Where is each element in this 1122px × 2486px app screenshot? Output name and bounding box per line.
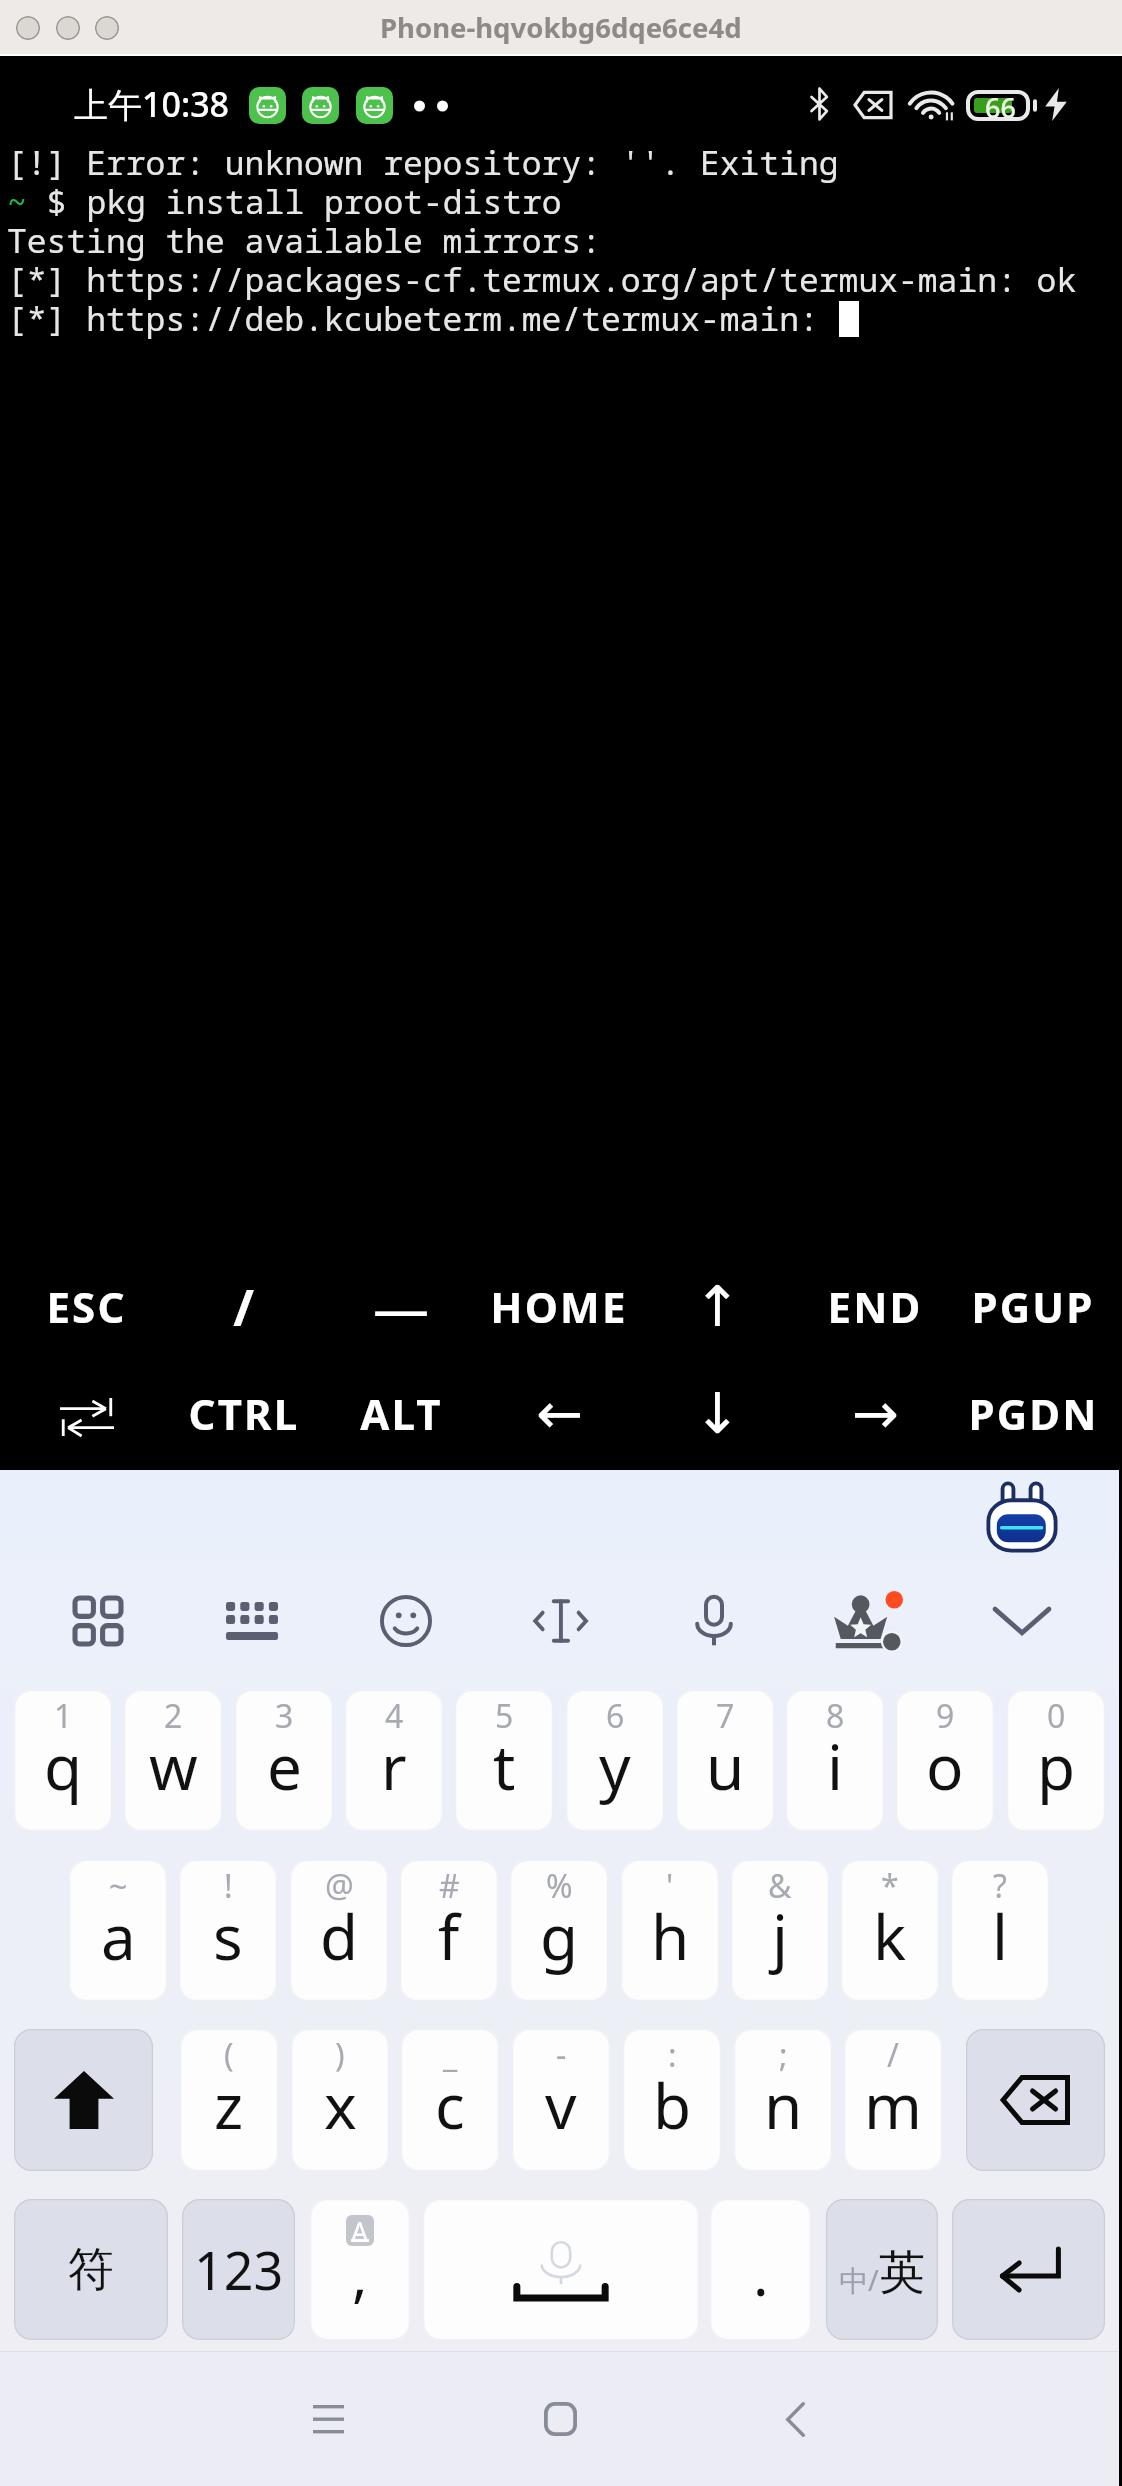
- staticText: 7: [716, 1694, 735, 1738]
- button[interactable]: i: [786, 1690, 884, 1831]
- staticText: ): [335, 2033, 345, 2077]
- button[interactable]: ↓: [638, 1363, 796, 1470]
- button[interactable]: 123: [182, 2199, 295, 2340]
- staticText: 0: [1047, 1694, 1066, 1738]
- button[interactable]: lang: [826, 2199, 938, 2340]
- button[interactable]: mic: [659, 1576, 769, 1666]
- staticText: c: [435, 2063, 465, 2147]
- button[interactable]: l: [951, 1860, 1049, 2001]
- button[interactable]: ESC: [8, 1256, 165, 1363]
- button[interactable]: a: [69, 1860, 167, 2001]
- staticText: ←: [536, 1381, 583, 1446]
- button[interactable]: PGUP: [954, 1256, 1112, 1363]
- button[interactable]: o: [896, 1690, 994, 1831]
- staticText: 123: [194, 2234, 284, 2305]
- button[interactable]: /: [165, 1256, 322, 1363]
- staticText: ?: [993, 1864, 1007, 1908]
- button[interactable]: PGDN: [954, 1363, 1112, 1470]
- staticText: m: [864, 2063, 922, 2147]
- staticText: [*] https://packages-cf.termux.org/apt/t…: [7, 257, 1077, 302]
- button[interactable]: .: [710, 2199, 811, 2340]
- button[interactable]: q: [14, 1690, 112, 1831]
- staticText: ↓: [694, 1381, 741, 1446]
- button[interactable]: Home: [510, 2369, 610, 2469]
- staticText: 1: [54, 1694, 73, 1738]
- staticText: 6: [606, 1694, 625, 1738]
- button[interactable]: p: [1007, 1690, 1105, 1831]
- button[interactable]: kb: [197, 1576, 307, 1666]
- button[interactable]: h: [621, 1860, 719, 2001]
- staticText: o: [926, 1724, 964, 1808]
- staticText: 9: [936, 1694, 955, 1738]
- button[interactable]: HOME: [480, 1256, 638, 1363]
- button[interactable]: Termux notification: [356, 87, 393, 124]
- staticText: ~: [7, 179, 27, 224]
- button[interactable]: 符: [14, 2199, 168, 2340]
- button[interactable]: g: [510, 1860, 608, 2001]
- button[interactable]: d: [290, 1860, 388, 2001]
- button[interactable]: Window button: [95, 16, 119, 40]
- staticText: !: [224, 1864, 233, 1908]
- button[interactable]: —: [322, 1256, 480, 1363]
- staticText: a: [101, 1894, 136, 1978]
- button[interactable]: shift: [14, 2029, 153, 2171]
- button[interactable]: CTRL: [165, 1363, 322, 1470]
- button[interactable]: t: [455, 1690, 553, 1831]
- button[interactable]: TAB: [8, 1363, 165, 1470]
- staticText: →: [852, 1381, 899, 1446]
- button[interactable]: b: [623, 2029, 721, 2171]
- button[interactable]: ,: [310, 2199, 410, 2340]
- button[interactable]: u: [676, 1690, 774, 1831]
- button[interactable]: Window button: [16, 16, 40, 40]
- button[interactable]: ←: [480, 1363, 638, 1470]
- staticText: q: [44, 1724, 83, 1808]
- button[interactable]: e: [235, 1690, 333, 1831]
- button[interactable]: x: [291, 2029, 389, 2171]
- button[interactable]: z: [180, 2029, 278, 2171]
- button[interactable]: space: [423, 2199, 699, 2340]
- button[interactable]: w: [124, 1690, 222, 1831]
- button[interactable]: Termux notification: [249, 87, 286, 124]
- staticText: 8: [826, 1694, 845, 1738]
- button[interactable]: down: [967, 1576, 1077, 1666]
- button[interactable]: Assistant: [987, 1482, 1057, 1552]
- staticText: END: [827, 1278, 923, 1335]
- button[interactable]: c: [401, 2029, 499, 2171]
- staticText: ;: [779, 2033, 788, 2077]
- button[interactable]: s: [179, 1860, 277, 2001]
- button[interactable]: crown: [813, 1576, 923, 1666]
- button[interactable]: grid: [43, 1576, 153, 1666]
- staticText: v: [545, 2063, 577, 2147]
- staticText: -: [556, 2033, 567, 2077]
- button[interactable]: ↑: [638, 1256, 796, 1363]
- staticText: 中/: [839, 2260, 879, 2300]
- button[interactable]: cursor: [505, 1576, 615, 1666]
- staticText: ~: [109, 1864, 128, 1908]
- button[interactable]: v: [512, 2029, 610, 2171]
- button[interactable]: y: [566, 1690, 664, 1831]
- staticText: i: [827, 1724, 843, 1808]
- button[interactable]: backspace: [966, 2029, 1105, 2171]
- button[interactable]: j: [731, 1860, 829, 2001]
- button[interactable]: enter: [952, 2199, 1105, 2340]
- staticText: PGDN: [968, 1385, 1099, 1442]
- button[interactable]: n: [734, 2029, 832, 2171]
- button[interactable]: Window button: [56, 16, 80, 40]
- staticText: h: [651, 1894, 690, 1978]
- staticText: t: [493, 1724, 516, 1808]
- button[interactable]: Recents: [278, 2369, 378, 2469]
- staticText: %: [546, 1864, 573, 1908]
- button[interactable]: r: [345, 1690, 443, 1831]
- button[interactable]: emoji: [351, 1576, 461, 1666]
- button[interactable]: Termux notification: [302, 87, 339, 124]
- button[interactable]: END: [796, 1256, 954, 1363]
- button[interactable]: m: [844, 2029, 942, 2171]
- button[interactable]: f: [400, 1860, 498, 2001]
- button[interactable]: →: [796, 1363, 954, 1470]
- staticText: w: [149, 1724, 198, 1808]
- button[interactable]: k: [841, 1860, 939, 2001]
- button[interactable]: Back: [745, 2369, 845, 2469]
- staticText: j: [772, 1894, 788, 1978]
- button[interactable]: ALT: [322, 1363, 480, 1470]
- staticText: ,: [352, 2234, 368, 2313]
